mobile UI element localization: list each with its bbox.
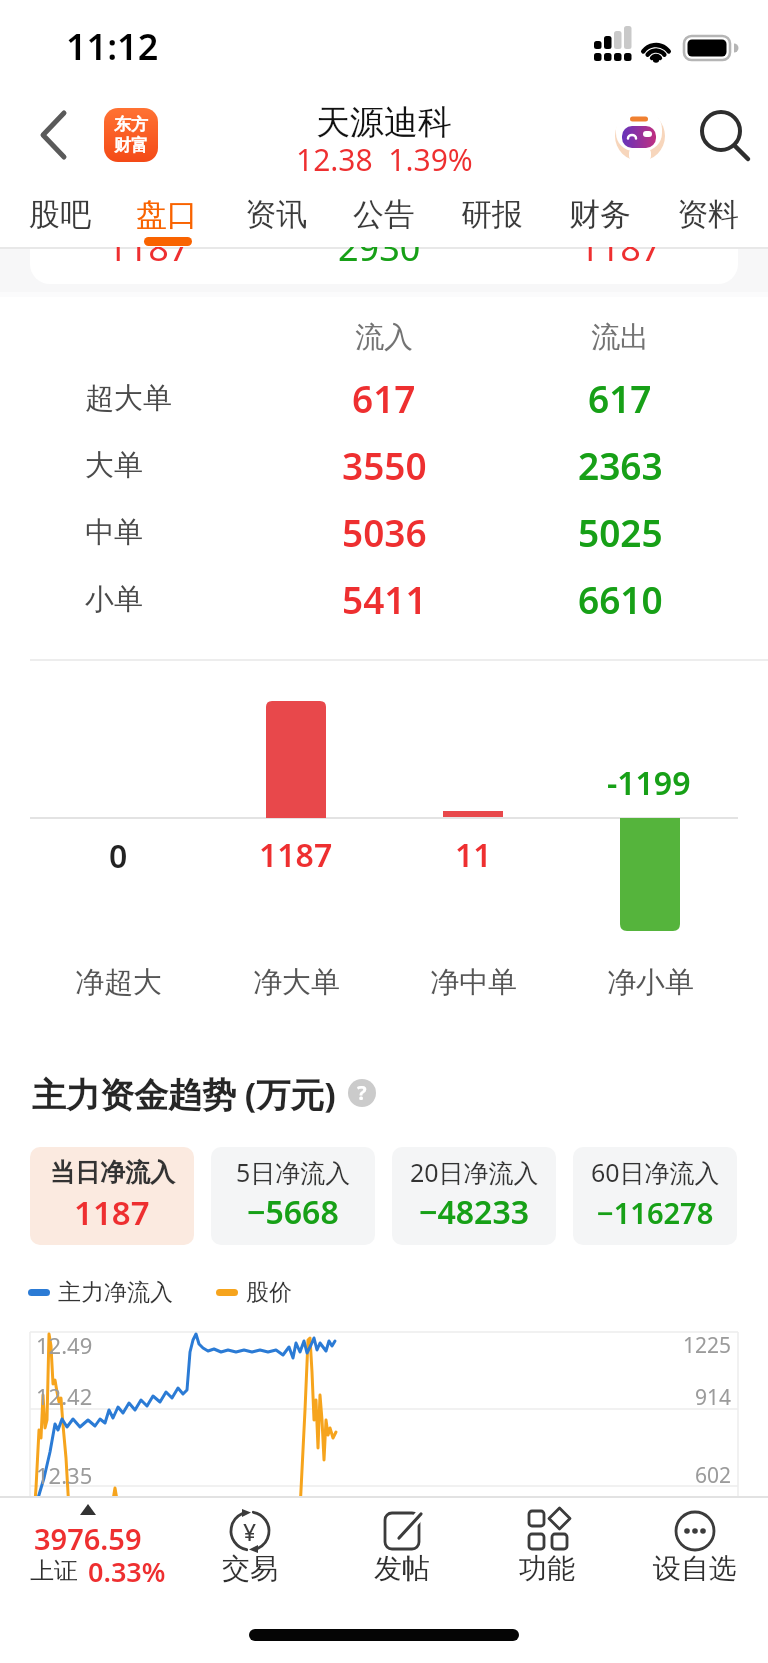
staticText: −48233 bbox=[419, 1190, 529, 1234]
staticText: 3976.59 bbox=[34, 1519, 142, 1558]
staticText: 617 bbox=[588, 373, 652, 423]
staticText: 1187 bbox=[107, 247, 190, 263]
staticText: 20日净流入 bbox=[410, 1155, 539, 1189]
staticText: 净大单 bbox=[253, 964, 340, 1001]
staticText: 6610 bbox=[578, 574, 663, 624]
staticText: 0 bbox=[109, 834, 128, 878]
staticText: 超大单 bbox=[85, 380, 172, 417]
staticText: 交易 bbox=[222, 1551, 278, 1586]
staticText: 914 bbox=[695, 1383, 732, 1412]
staticText: 设自选 bbox=[653, 1551, 737, 1586]
staticText: 1187 bbox=[579, 247, 662, 263]
staticText: 公告 bbox=[353, 195, 415, 234]
staticText: 东方 bbox=[114, 114, 148, 135]
staticText: 2363 bbox=[578, 440, 663, 490]
staticText: -1199 bbox=[607, 761, 691, 805]
staticText: 当日净流入 bbox=[50, 1157, 175, 1188]
staticText: 0.33% bbox=[88, 1553, 166, 1590]
staticText: 功能 bbox=[519, 1551, 575, 1586]
staticText: 2930 bbox=[338, 247, 421, 263]
staticText: 净超大 bbox=[75, 964, 162, 1001]
staticText: 资料 bbox=[677, 195, 739, 234]
staticText: 天源迪科 bbox=[316, 101, 452, 144]
staticText: 1187 bbox=[259, 833, 333, 877]
staticText: 1187 bbox=[74, 1190, 150, 1235]
staticText: 净中单 bbox=[430, 964, 517, 1001]
staticText: 5025 bbox=[578, 507, 663, 557]
staticText: ? bbox=[357, 1079, 367, 1106]
staticText: −116278 bbox=[597, 1193, 714, 1232]
staticText: 股价 bbox=[246, 1278, 292, 1307]
staticText: ¥ bbox=[243, 1516, 257, 1547]
staticText: −5668 bbox=[247, 1190, 339, 1234]
staticText: 研报 bbox=[461, 195, 523, 234]
staticText: 小单 bbox=[85, 581, 143, 618]
staticText: 5411 bbox=[342, 574, 427, 624]
staticText: 1225 bbox=[683, 1331, 732, 1360]
staticText: 上证 bbox=[30, 1556, 78, 1586]
staticText: 净小单 bbox=[607, 964, 694, 1001]
staticText: 12.35 bbox=[36, 1460, 93, 1490]
staticText: 11:12 bbox=[66, 22, 159, 71]
staticText: 12.49 bbox=[36, 1330, 93, 1360]
staticText: 中单 bbox=[85, 514, 143, 551]
staticText: 股吧 bbox=[29, 195, 91, 234]
staticText: 617 bbox=[352, 373, 416, 423]
staticText: 11 bbox=[455, 833, 492, 877]
staticText: 盘口 bbox=[136, 195, 198, 234]
staticText: 12.38 1.39% bbox=[296, 139, 473, 180]
staticText: 发帖 bbox=[374, 1551, 430, 1586]
staticText: 3550 bbox=[342, 440, 427, 490]
staticText: 主力净流入 bbox=[58, 1278, 173, 1307]
staticText: 资讯 bbox=[245, 195, 307, 234]
staticText: 5036 bbox=[342, 507, 427, 557]
staticText: 流出 bbox=[591, 319, 649, 356]
staticText: 财富 bbox=[114, 135, 148, 156]
staticText: 流入 bbox=[355, 319, 413, 356]
staticText: 大单 bbox=[85, 447, 143, 484]
staticText: 5日净流入 bbox=[236, 1155, 351, 1189]
staticText: 60日净流入 bbox=[591, 1155, 720, 1189]
staticText: 财务 bbox=[569, 195, 631, 234]
staticText: 602 bbox=[695, 1461, 732, 1490]
staticText: 12.42 bbox=[36, 1381, 93, 1411]
staticText: 主力资金趋势 (万元) bbox=[32, 1071, 336, 1117]
